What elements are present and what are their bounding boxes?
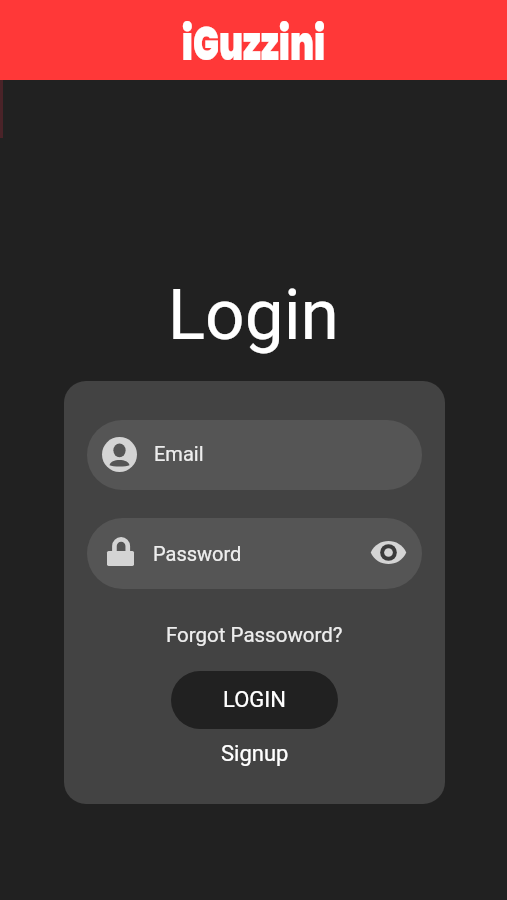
button[interactable]: Show password: [370, 535, 408, 573]
button[interactable]: Password: [87, 518, 422, 589]
staticText: LOGIN: [223, 687, 286, 713]
button[interactable]: Forgot Passoword?: [158, 619, 351, 651]
button[interactable]: Signup: [213, 737, 297, 771]
button[interactable]: LOGIN: [171, 671, 338, 729]
staticText: Password: [153, 542, 242, 565]
button[interactable]: Email: [87, 420, 422, 490]
staticText: Login: [168, 274, 339, 356]
staticText: Email: [154, 442, 204, 465]
staticText: iGuzzini: [182, 11, 325, 77]
